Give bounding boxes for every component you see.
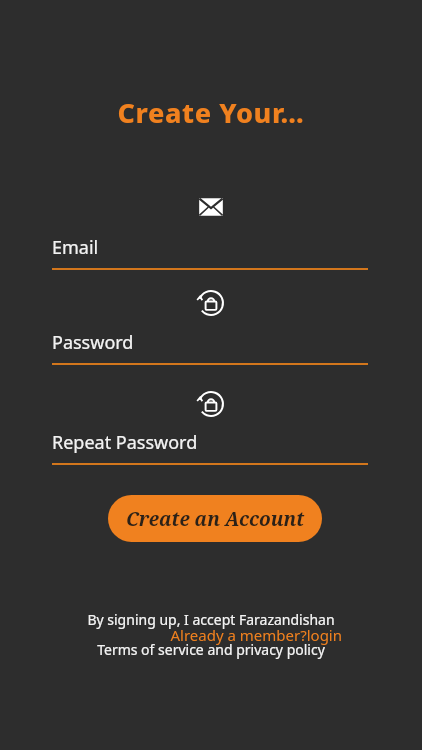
button[interactable]: Email	[52, 235, 368, 271]
button[interactable]: Create an Account	[108, 495, 322, 542]
staticText: Password	[52, 330, 134, 355]
other: Email	[197, 193, 225, 221]
button[interactable]: Already a member?login	[150, 625, 342, 647]
staticText: Create an Account	[126, 506, 305, 532]
staticText: Already a member?login	[150, 625, 342, 647]
other: Password	[196, 389, 226, 419]
staticText: Repeat Password	[52, 430, 198, 455]
button[interactable]: Repeat Password	[52, 430, 368, 466]
staticText: Terms of service and privacy policy	[0, 640, 422, 660]
staticText: Email	[52, 235, 99, 260]
button[interactable]: Password	[52, 330, 368, 366]
other: Password	[196, 288, 226, 318]
staticText: Create Your…	[0, 94, 422, 134]
staticText: By signing up, I accept Farazandishan	[0, 610, 422, 630]
